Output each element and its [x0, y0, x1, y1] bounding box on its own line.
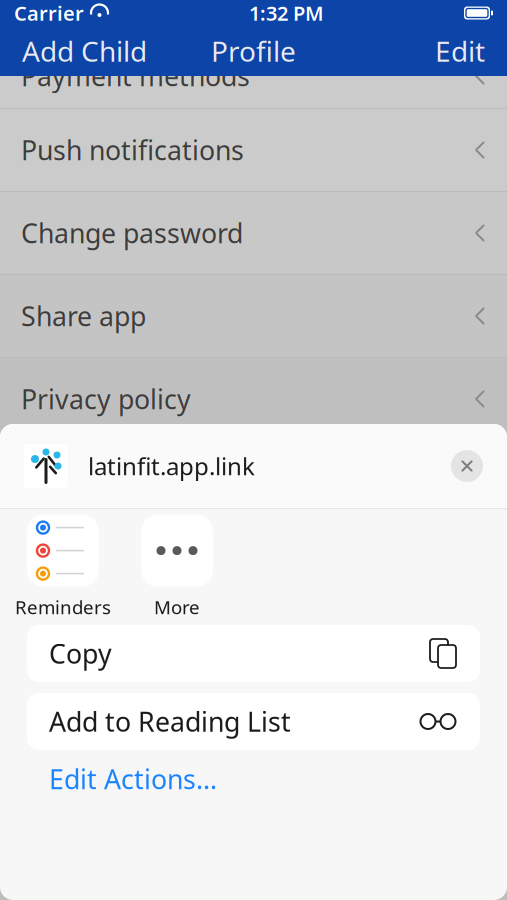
- button[interactable]: Push notifications: [0, 109, 507, 191]
- staticText: latinfit.app.link: [88, 450, 255, 482]
- button[interactable]: Privacy policy: [0, 358, 507, 440]
- staticText: Add Child: [22, 32, 147, 70]
- staticText: Reminders: [15, 595, 111, 619]
- staticText: Profile: [211, 32, 296, 70]
- staticText: Push notifications: [21, 132, 244, 168]
- button[interactable]: Add to Reading List: [27, 693, 480, 750]
- staticText: Carrier: [14, 0, 84, 26]
- button[interactable]: Share app: [0, 275, 507, 357]
- staticText: 1:32 PM: [249, 0, 324, 26]
- button[interactable]: Add Child: [14, 24, 155, 78]
- button[interactable]: Payment methods: [0, 72, 507, 108]
- button[interactable]: More: [128, 515, 226, 619]
- button[interactable]: Edit: [427, 24, 493, 78]
- button[interactable]: Change password: [0, 192, 507, 274]
- button[interactable]: Edit Actions…: [0, 750, 507, 808]
- staticText: Change password: [21, 215, 243, 251]
- staticText: Add to Reading List: [49, 704, 291, 739]
- button[interactable]: Reminders: [14, 515, 112, 619]
- staticText: Edit Actions…: [49, 761, 217, 797]
- staticText: Privacy policy: [21, 381, 191, 417]
- staticText: Copy: [49, 636, 112, 671]
- button[interactable]: Copy: [27, 625, 480, 682]
- staticText: More: [154, 595, 200, 619]
- staticText: Payment methods: [21, 58, 250, 94]
- staticText: Edit: [435, 32, 485, 70]
- staticText: Share app: [21, 298, 146, 334]
- button[interactable]: Close: [445, 444, 489, 488]
